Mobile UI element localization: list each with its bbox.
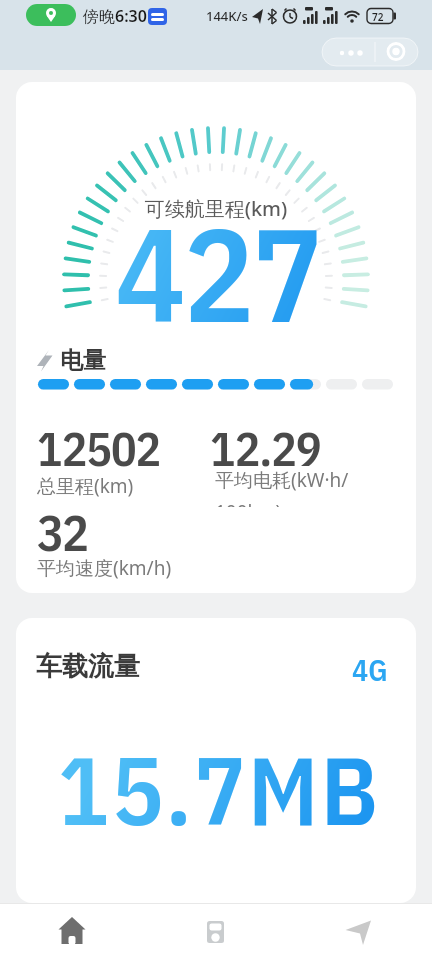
staticText: 车载流量 [36,650,140,683]
staticText: 平均电耗(kW·h/ 100km) [215,467,349,507]
staticText: 15.7MB [19,727,416,852]
staticText: 12502 [37,417,161,479]
staticText: 可续航里程(km) [16,195,416,222]
staticText: 32 [37,500,87,565]
staticText: 傍晚6:30 [83,5,147,27]
staticText: 总里程(km) [37,473,134,499]
staticText: 4G [352,650,388,689]
staticText: 427 [18,188,416,358]
staticText: 电量 [60,346,106,375]
staticText: 12.29 [210,417,321,479]
staticText: 平均速度(km/h) [37,555,172,581]
staticText: 144K/s [206,7,248,25]
staticText: 72 [372,10,384,24]
